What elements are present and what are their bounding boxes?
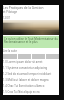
staticText: Les Pratiques de la Gestion bbox=[3, 6, 44, 10]
staticText: 12/07 bbox=[3, 16, 10, 20]
staticText: 1.4 Chac Tui Exercitation ullamco bbox=[3, 84, 45, 88]
staticText: Ce qu'on utilise le Tout Modernisateur d… bbox=[4, 37, 58, 44]
staticText: 1.2 Sed do eiusmod tempor incididunt bbox=[3, 72, 52, 76]
staticText: Lire la suite bbox=[3, 49, 17, 53]
staticText: 1.5 Cras Tui Nisi aliquip ex ea bbox=[3, 90, 40, 94]
staticText: 1.1 Systeme consectetur adipiscing bbox=[3, 66, 48, 70]
staticText: 1.3 Mollis ut labore et dolore magna bbox=[3, 78, 49, 82]
staticText: et Pilotage bbox=[3, 10, 18, 14]
button[interactable]: Ce qu'on utilise le Tout Modernisateur d… bbox=[3, 36, 59, 48]
staticText: 1.0 Lorem ipsum dolor sit amet bbox=[3, 60, 43, 64]
button[interactable]: Article image bbox=[3, 20, 59, 35]
